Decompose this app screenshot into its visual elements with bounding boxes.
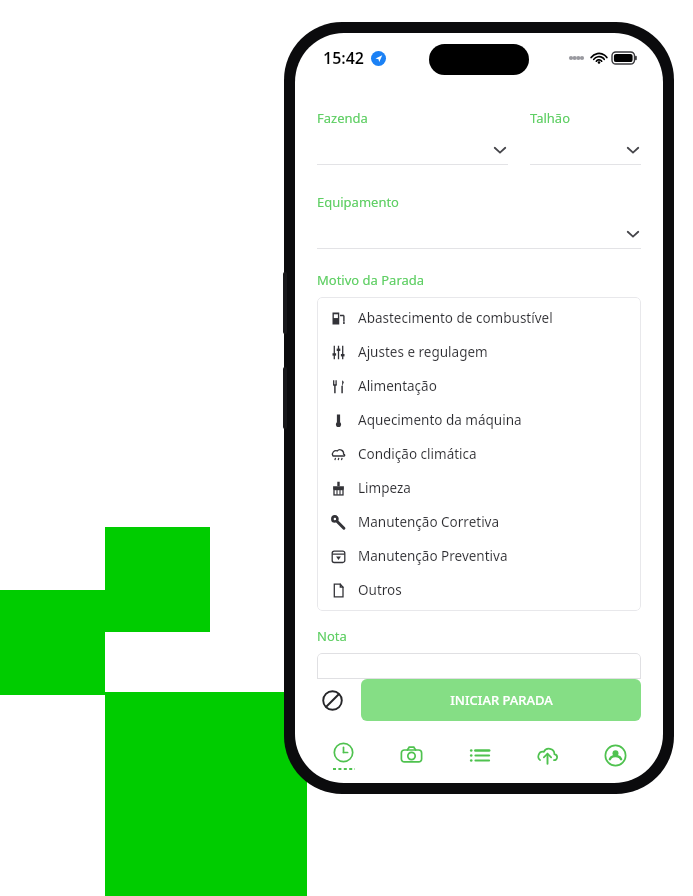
button[interactable]: Talhão — [530, 109, 641, 165]
staticText: Ajustes e regulagem — [358, 343, 488, 361]
staticText: Fazenda — [317, 109, 368, 127]
button[interactable]: Condição climática — [317, 437, 641, 471]
button[interactable]: Fazenda — [317, 109, 508, 165]
button[interactable]: INICIAR PARADA — [361, 679, 641, 721]
button[interactable]: Alimentação — [317, 369, 641, 403]
staticText: Manutenção Corretiva — [358, 513, 500, 531]
button[interactable]: Sincronizar — [513, 733, 581, 777]
staticText: Talhão — [530, 109, 571, 127]
button[interactable]: Aquecimento da máquina — [317, 403, 641, 437]
button[interactable]: Ajustes e regulagem — [317, 335, 641, 369]
staticText: Manutenção Preventiva — [358, 547, 508, 565]
button[interactable]: Equipamento — [317, 193, 641, 249]
button[interactable]: Lista — [445, 733, 513, 777]
button[interactable]: Outros — [317, 573, 641, 607]
staticText: Aquecimento da máquina — [358, 411, 522, 429]
button[interactable]: Manutenção Preventiva — [317, 539, 641, 573]
button[interactable]: Limpeza — [317, 471, 641, 505]
staticText: Abastecimento de combustível — [358, 309, 553, 327]
button[interactable]: Câmera — [377, 733, 445, 777]
button[interactable]: Cancelar parada — [317, 685, 347, 715]
staticText: INICIAR PARADA — [450, 691, 553, 709]
staticText: 15:42 — [323, 47, 365, 69]
button[interactable]: Abastecimento de combustível — [317, 301, 641, 335]
staticText: Outros — [358, 581, 402, 599]
staticText: Equipamento — [317, 193, 399, 211]
staticText: Nota — [317, 627, 347, 645]
button[interactable] — [317, 653, 641, 679]
staticText: Condição climática — [358, 445, 477, 463]
button[interactable]: Horas — [309, 733, 377, 777]
staticText: Limpeza — [358, 479, 411, 497]
button[interactable]: Manutenção Corretiva — [317, 505, 641, 539]
staticText: Alimentação — [358, 377, 437, 395]
button[interactable]: Perfil — [581, 733, 649, 777]
staticText: Motivo da Parada — [317, 271, 425, 289]
